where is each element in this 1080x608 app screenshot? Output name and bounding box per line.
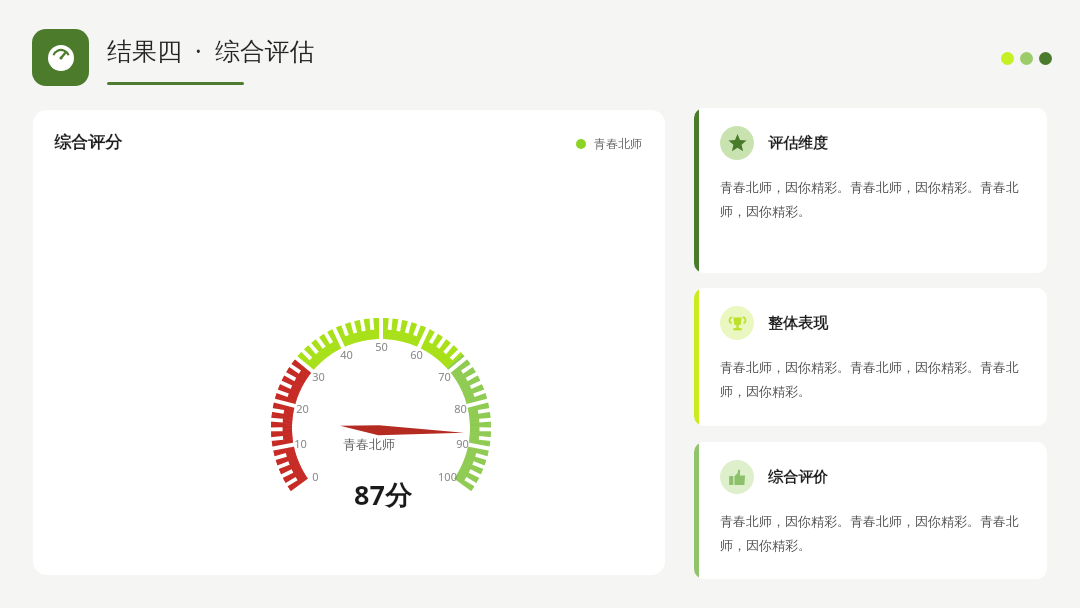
button[interactable]: 青春北师 (576, 136, 642, 151)
button[interactable]: 评估维度 (694, 108, 1047, 273)
staticText: 综合评分 (54, 132, 122, 153)
staticText: 整体表现 (768, 314, 828, 333)
staticText: 青春北师，因你精彩。青春北师，因你精彩。青春北师，因你精彩。 (720, 359, 1029, 400)
button[interactable]: Dashboard (32, 29, 89, 86)
staticText: 40 (340, 347, 353, 362)
staticText: 10 (294, 436, 307, 451)
staticText: 50 (375, 339, 388, 354)
staticText: 0 (312, 469, 319, 484)
staticText: 综合评价 (768, 468, 828, 487)
staticText: 30 (312, 369, 325, 384)
staticText: 青春北师，因你精彩。青春北师，因你精彩。青春北师，因你精彩。 (720, 179, 1029, 220)
staticText: 70 (438, 369, 451, 384)
staticText: 20 (296, 401, 309, 416)
staticText: 青春北师 (594, 136, 642, 151)
staticText: 60 (410, 347, 423, 362)
staticText: 80 (454, 401, 467, 416)
staticText: 结果四 · 综合评估 (107, 33, 315, 67)
staticText: 87分 (354, 476, 412, 512)
button[interactable]: 整体表现 (694, 288, 1047, 426)
button[interactable]: 综合评价 (694, 442, 1047, 579)
staticText: 青春北师，因你精彩。青春北师，因你精彩。青春北师，因你精彩。 (720, 513, 1029, 554)
staticText: 90 (456, 436, 469, 451)
staticText: 评估维度 (768, 134, 828, 153)
staticText: 青春北师 (343, 436, 395, 452)
button[interactable]: 综合评分 (33, 110, 665, 575)
staticText: 100 (438, 469, 457, 484)
